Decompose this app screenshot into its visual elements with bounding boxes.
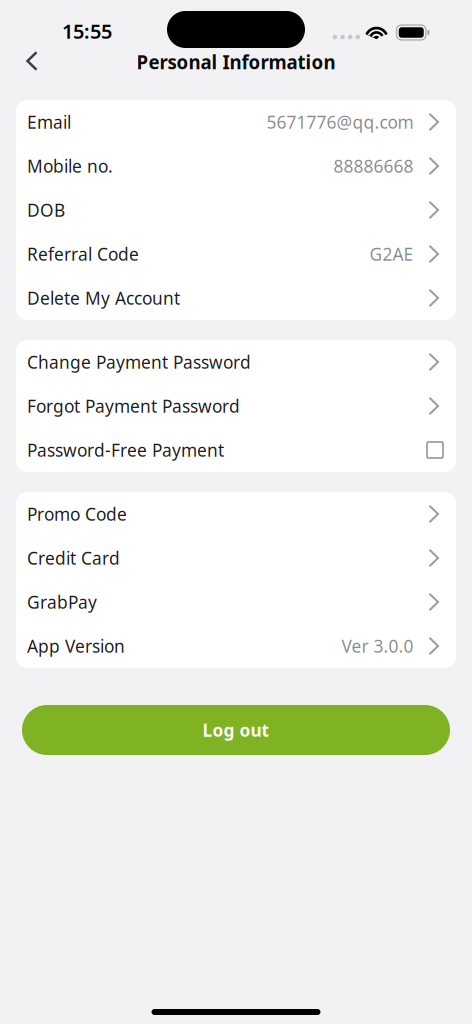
staticText: Promo Code xyxy=(27,502,127,525)
staticText: Log out xyxy=(202,718,269,741)
staticText: Password-Free Payment xyxy=(27,438,224,461)
staticText: Change Payment Password xyxy=(27,350,251,373)
button[interactable]: Delete My Account xyxy=(16,276,456,320)
button[interactable]: Password-Free Payment xyxy=(16,428,456,472)
button[interactable]: Log out xyxy=(22,705,450,755)
button[interactable]: Referral Code xyxy=(16,232,456,276)
staticText: Email xyxy=(27,110,71,133)
staticText: Personal Information xyxy=(136,50,335,74)
staticText: DOB xyxy=(27,198,65,221)
staticText: Credit Card xyxy=(27,546,120,569)
button[interactable]: DOB xyxy=(16,188,456,232)
button[interactable]: Change Payment Password xyxy=(16,340,456,384)
staticText: Ver 3.0.0 xyxy=(341,634,413,657)
staticText: Referral Code xyxy=(27,242,139,265)
button[interactable]: Forgot Payment Password xyxy=(16,384,456,428)
staticText: 88886668 xyxy=(333,154,413,177)
button[interactable]: Back xyxy=(11,46,53,78)
staticText: 15:55 xyxy=(62,18,112,44)
staticText: 5671776@qq.com xyxy=(266,110,413,133)
staticText: Mobile no. xyxy=(27,154,113,177)
button[interactable]: Mobile no. xyxy=(16,144,456,188)
button[interactable]: App Version xyxy=(16,624,456,668)
button[interactable]: Promo Code xyxy=(16,492,456,536)
staticText: Forgot Payment Password xyxy=(27,394,240,417)
staticText: G2AE xyxy=(369,242,413,265)
staticText: Delete My Account xyxy=(27,286,180,309)
button[interactable]: Credit Card xyxy=(16,536,456,580)
button[interactable]: GrabPay xyxy=(16,580,456,624)
staticText: App Version xyxy=(27,634,125,657)
button[interactable]: Email xyxy=(16,100,456,144)
staticText: GrabPay xyxy=(27,590,97,613)
